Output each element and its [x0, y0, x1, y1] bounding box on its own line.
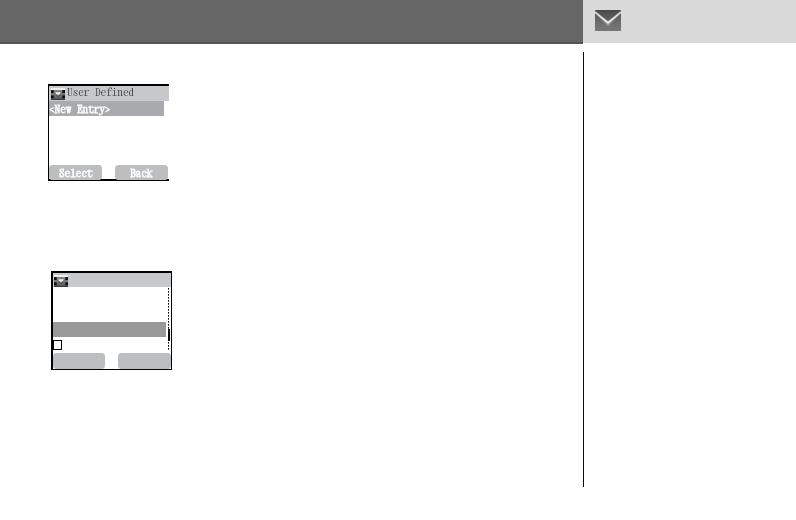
button[interactable]: Messages [583, 0, 796, 43]
button[interactable]: User Defined [49, 86, 169, 101]
staticText: Back [130, 166, 153, 179]
staticText: Select [59, 166, 93, 179]
staticText: User Defined [67, 85, 135, 98]
button[interactable]: <New Entry> [49, 101, 164, 116]
button[interactable]: Left soft key [53, 353, 105, 369]
button[interactable]: Select [49, 165, 102, 180]
button[interactable]: Right soft key [118, 353, 171, 369]
button[interactable] [53, 273, 171, 287]
button[interactable]: Back [115, 165, 168, 180]
staticText: <New Entry> [49, 102, 111, 115]
